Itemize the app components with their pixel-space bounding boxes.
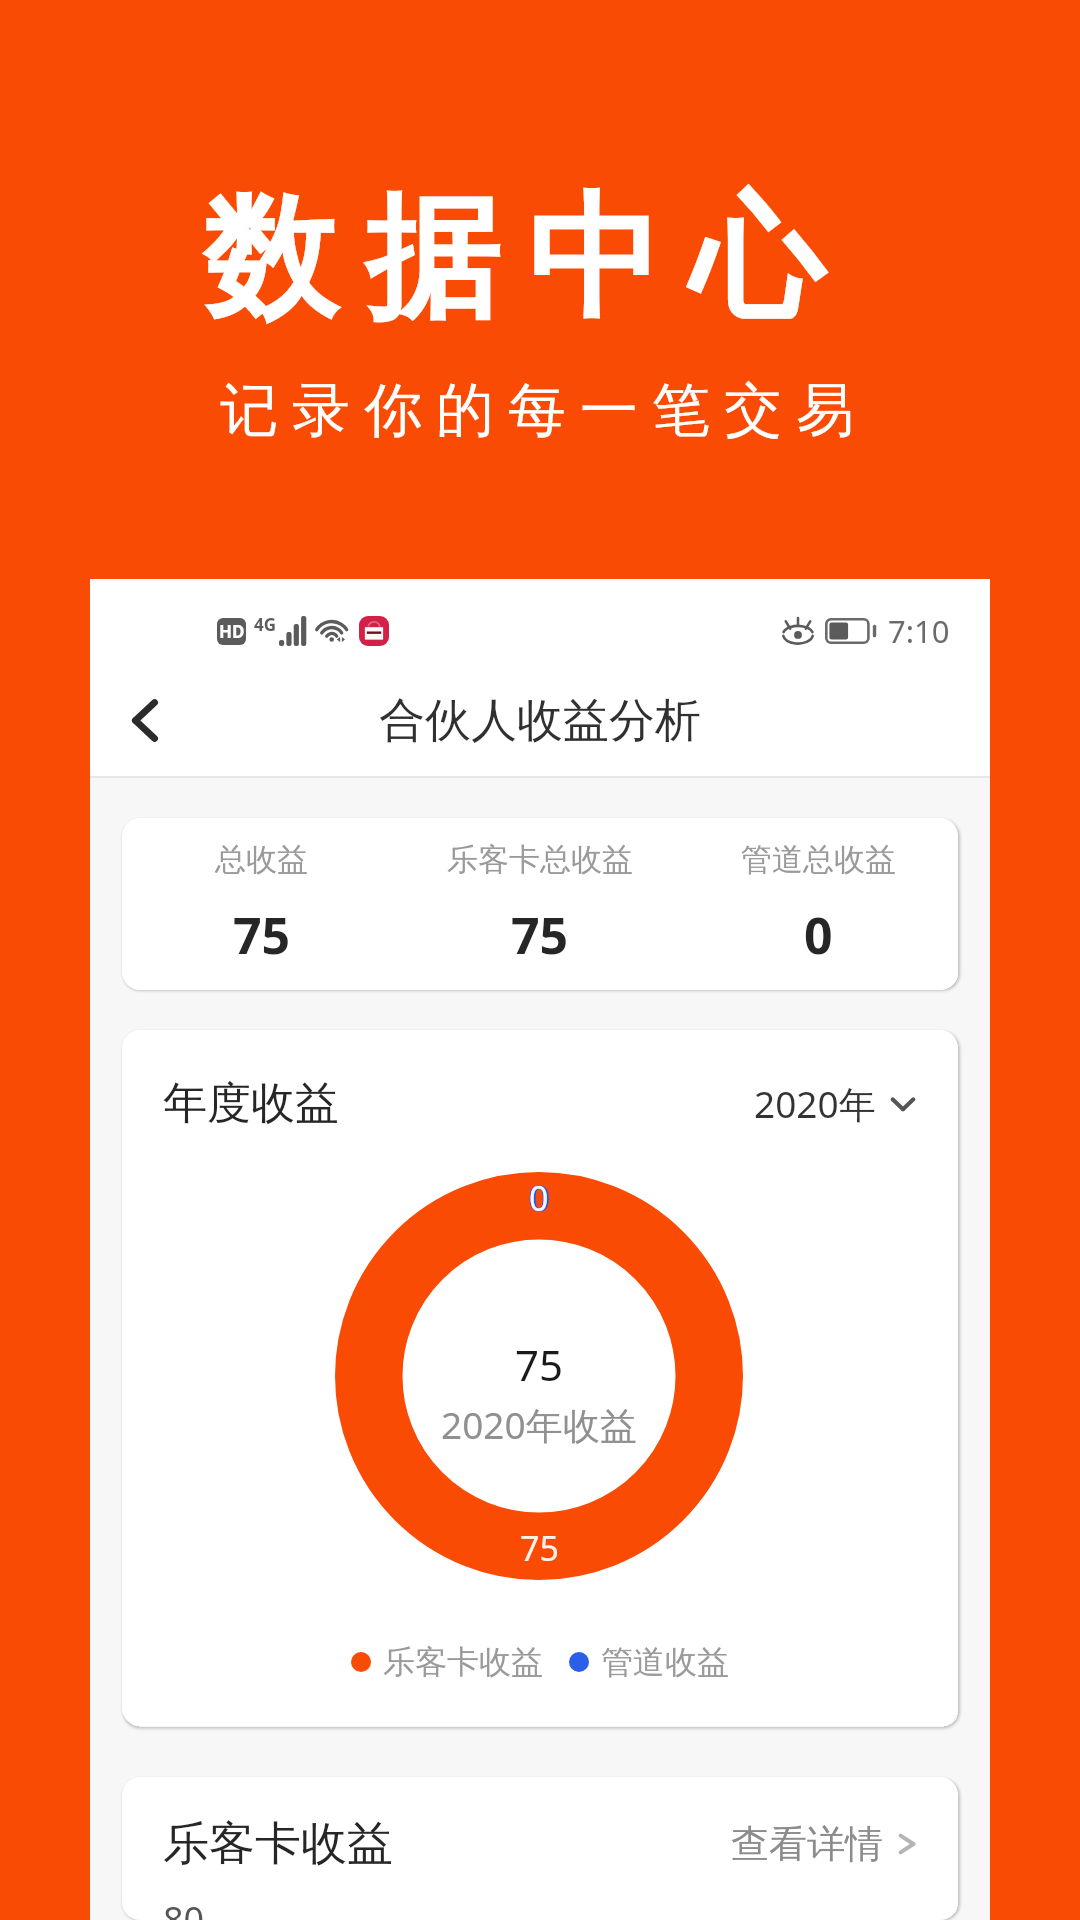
staticText: 记录你的每一笔交易 — [213, 374, 861, 447]
button[interactable]: 总收益 — [122, 818, 400, 990]
staticText: 2020年收益 — [441, 1399, 637, 1450]
button[interactable]: 乐客卡收益 — [351, 1642, 543, 1682]
staticText: 乐客卡总收益 — [447, 840, 633, 879]
staticText: 80 — [163, 1895, 205, 1920]
staticText: 管道收益 — [601, 1642, 729, 1682]
button[interactable]: 管道总收益 — [679, 818, 958, 990]
staticText: 总收益 — [215, 840, 308, 879]
staticText: 数据中心 — [189, 175, 837, 344]
staticText: 0 — [529, 1175, 549, 1221]
button[interactable]: 管道收益 — [569, 1642, 729, 1682]
button[interactable]: 乐客卡总收益 — [400, 818, 679, 990]
staticText: 75 — [233, 901, 291, 969]
staticText: 75 — [511, 901, 569, 969]
staticText: 管道总收益 — [741, 840, 896, 879]
staticText: 2020年 — [754, 1078, 876, 1129]
staticText: HD — [219, 620, 245, 643]
staticText: 0 — [531, 1175, 551, 1221]
button[interactable]: 2020年 — [754, 1078, 916, 1129]
staticText: 4G — [254, 613, 277, 636]
staticText: 0 — [528, 1175, 548, 1221]
staticText: 7:10 — [888, 610, 950, 652]
staticText: 合伙人收益分析 — [379, 692, 701, 750]
staticText: 年度收益 — [163, 1076, 339, 1131]
staticText: 乐客卡收益 — [383, 1642, 543, 1682]
button[interactable]: 查看详情 — [731, 1820, 915, 1868]
staticText: 75 — [520, 1525, 559, 1571]
button[interactable]: Back — [107, 682, 183, 758]
staticText: 乐客卡收益 — [163, 1815, 393, 1873]
staticText: 查看详情 — [731, 1820, 883, 1868]
staticText: 75 — [515, 1336, 564, 1393]
staticText: 0 — [804, 901, 833, 969]
